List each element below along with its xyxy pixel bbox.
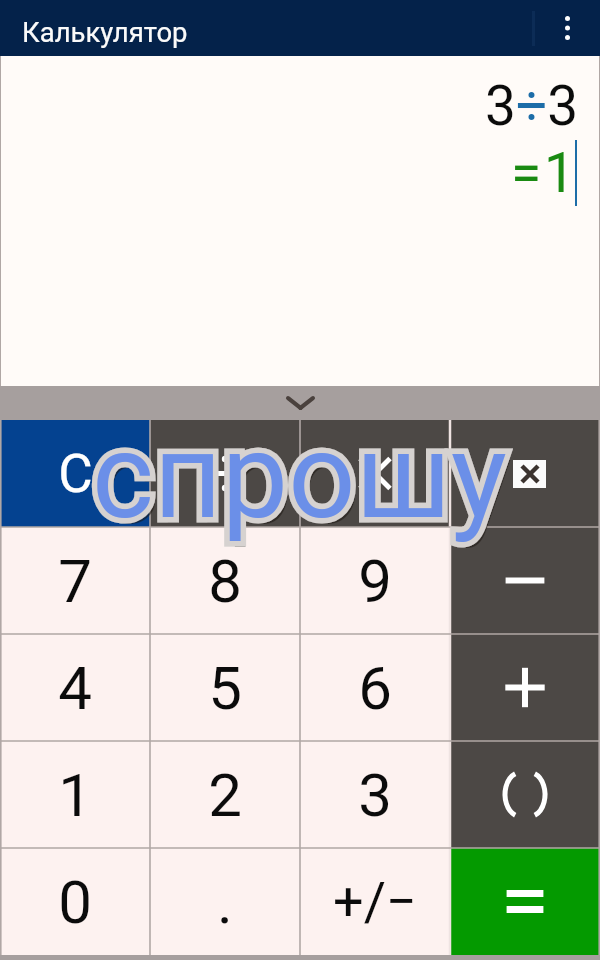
staticText: спрошу	[97, 414, 512, 552]
button[interactable]: 2	[150, 741, 300, 848]
staticText: =	[511, 141, 542, 205]
button[interactable]: Multiply	[300, 420, 450, 527]
button[interactable]: Parentheses	[450, 741, 600, 848]
staticText: 9	[358, 546, 392, 616]
button[interactable]: Divide	[150, 420, 300, 527]
button[interactable]: 7	[0, 527, 150, 634]
button[interactable]: 1	[0, 741, 150, 848]
button[interactable]: Backspace	[450, 420, 600, 527]
staticText: 1	[58, 760, 92, 830]
staticText: +/−	[333, 870, 417, 933]
button[interactable]: +/−	[300, 848, 450, 955]
staticText: 6	[358, 653, 392, 723]
staticText: 0	[58, 867, 92, 937]
button[interactable]: Minus	[450, 527, 600, 634]
button[interactable]: Close ad	[513, 460, 546, 488]
staticText: C	[58, 443, 93, 505]
staticText: Калькулятор	[22, 16, 188, 48]
button[interactable]: .	[150, 848, 300, 955]
button[interactable]: 8	[150, 527, 300, 634]
button[interactable]: Collapse keypad	[0, 386, 600, 420]
button[interactable]: C	[0, 420, 150, 527]
staticText: спрошу	[92, 408, 507, 546]
staticText: 5	[208, 653, 242, 723]
staticText: 4	[58, 653, 92, 723]
button[interactable]: 6	[300, 634, 450, 741]
button[interactable]: 9	[300, 527, 450, 634]
staticText: 2	[208, 760, 242, 830]
staticText: 1	[544, 141, 575, 205]
button[interactable]: 4	[0, 634, 150, 741]
button[interactable]: Equals	[450, 848, 600, 955]
staticText: 8	[208, 546, 242, 616]
button[interactable]: Plus	[450, 634, 600, 741]
staticText: .	[217, 867, 233, 937]
button[interactable]: 0	[0, 848, 150, 955]
button[interactable]: 3	[300, 741, 450, 848]
staticText: 3÷3	[485, 74, 579, 138]
staticText: 3	[358, 760, 392, 830]
staticText: 7	[58, 546, 92, 616]
staticText: спрошу	[92, 408, 507, 546]
button[interactable]: 5	[150, 634, 300, 741]
button[interactable]: More options	[535, 0, 600, 56]
